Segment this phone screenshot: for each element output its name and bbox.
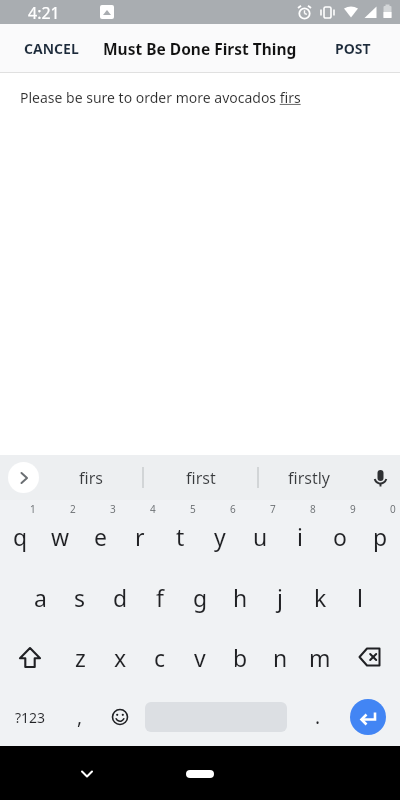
button[interactable]: h — [220, 568, 260, 626]
staticText: l — [357, 582, 363, 613]
staticText: x — [114, 642, 127, 673]
button[interactable] — [100, 688, 140, 746]
staticText: POST — [335, 39, 371, 58]
staticText: i — [297, 521, 303, 552]
staticText: s — [74, 582, 86, 613]
button[interactable]: . — [298, 688, 338, 746]
button[interactable]: y — [200, 508, 240, 564]
button[interactable]: firstly — [259, 455, 359, 500]
button[interactable] — [350, 699, 386, 735]
staticText: 2 — [70, 502, 76, 516]
button[interactable]: r — [120, 508, 160, 564]
button[interactable]: u — [240, 508, 280, 564]
button[interactable]: t — [160, 508, 200, 564]
button[interactable]: , — [60, 688, 100, 746]
staticText: firstly — [288, 467, 330, 489]
staticText: c — [154, 642, 166, 673]
button[interactable]: firs — [43, 455, 138, 500]
button[interactable]: s — [60, 568, 100, 626]
staticText: u — [253, 521, 268, 552]
staticText: q — [13, 521, 28, 552]
staticText: e — [94, 521, 107, 552]
button[interactable]: v — [180, 628, 220, 686]
button[interactable]: a — [20, 568, 60, 626]
button[interactable]: first — [144, 455, 258, 500]
button[interactable] — [340, 628, 400, 686]
staticText: f — [156, 582, 164, 613]
staticText: , — [77, 704, 83, 730]
staticText: z — [75, 642, 86, 673]
staticText: y — [214, 521, 226, 552]
staticText: m — [309, 642, 331, 673]
staticText: 8 — [310, 502, 316, 516]
staticText: 4:21 — [28, 2, 60, 24]
button[interactable]: o — [320, 508, 360, 564]
button[interactable]: ?123 — [0, 688, 60, 746]
staticText: p — [373, 521, 388, 552]
button[interactable]: n — [260, 628, 300, 686]
staticText: Please be sure to order more avocados fi… — [20, 88, 301, 107]
staticText: 5 — [190, 502, 196, 516]
staticText: v — [194, 642, 206, 673]
staticText: firs — [79, 467, 103, 489]
staticText: 6 — [230, 502, 236, 516]
staticText: o — [333, 521, 347, 552]
staticText: d — [113, 582, 128, 613]
staticText: r — [135, 521, 145, 552]
button[interactable]: q — [0, 508, 40, 564]
button[interactable]: c — [140, 628, 180, 686]
button[interactable] — [67, 754, 107, 794]
button[interactable] — [186, 770, 214, 778]
staticText: j — [277, 582, 283, 613]
staticText: . — [315, 704, 321, 730]
button[interactable]: e — [80, 508, 120, 564]
button[interactable]: f — [140, 568, 180, 626]
button[interactable]: l — [340, 568, 380, 626]
staticText: w — [51, 521, 70, 552]
button[interactable]: m — [300, 628, 340, 686]
button[interactable]: p — [360, 508, 400, 564]
staticText: ?123 — [15, 708, 46, 727]
staticText: 0 — [390, 502, 396, 516]
button[interactable] — [0, 628, 60, 686]
staticText: 1 — [30, 502, 36, 516]
button[interactable]: d — [100, 568, 140, 626]
staticText: h — [233, 582, 248, 613]
button[interactable]: POST — [315, 27, 400, 70]
staticText: Must Be Done First Thing — [103, 38, 297, 59]
staticText: CANCEL — [24, 39, 79, 58]
button[interactable]: k — [300, 568, 340, 626]
staticText: 3 — [110, 502, 116, 516]
staticText: n — [273, 642, 288, 673]
staticText: 9 — [350, 502, 356, 516]
staticText: a — [34, 582, 47, 613]
staticText: first — [186, 467, 216, 489]
staticText: g — [193, 582, 208, 613]
button[interactable] — [8, 462, 39, 493]
button[interactable]: x — [100, 628, 140, 686]
button[interactable]: i — [280, 508, 320, 564]
staticText: b — [233, 642, 248, 673]
staticText: t — [176, 521, 185, 552]
button[interactable] — [367, 465, 393, 491]
staticText: 4 — [150, 502, 156, 516]
button[interactable]: z — [60, 628, 100, 686]
button[interactable]: b — [220, 628, 260, 686]
staticText: 7 — [270, 502, 276, 516]
button[interactable]: j — [260, 568, 300, 626]
button[interactable]: w — [40, 508, 80, 564]
staticText: k — [314, 582, 327, 613]
button[interactable]: CANCEL — [0, 27, 103, 70]
button[interactable]: g — [180, 568, 220, 626]
